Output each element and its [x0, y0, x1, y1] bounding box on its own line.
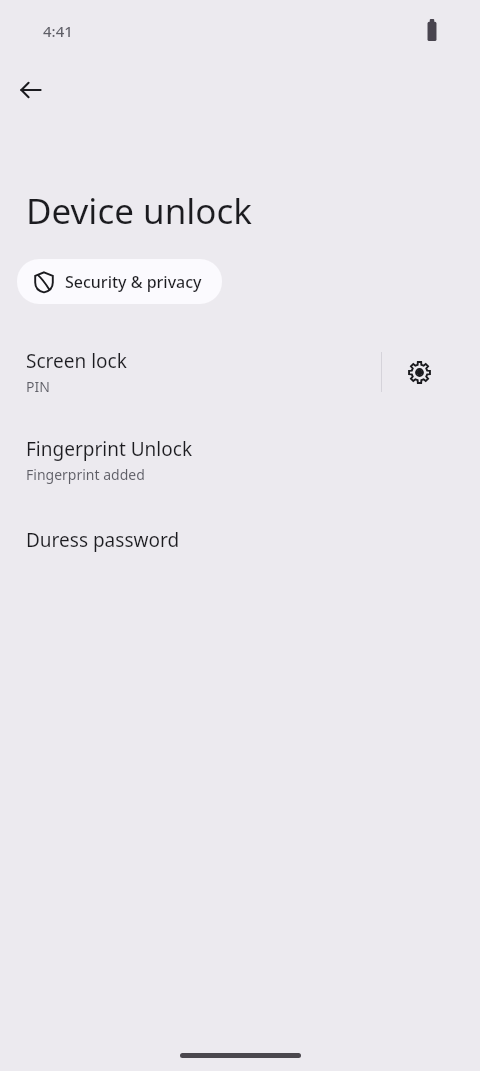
staticText: 4:41 — [43, 21, 73, 41]
staticText: Fingerprint Unlock — [26, 436, 193, 462]
staticText: Screen lock — [26, 348, 127, 374]
staticText: Duress password — [26, 527, 180, 553]
staticText: PIN — [26, 377, 50, 396]
button[interactable]: Screen lock — [0, 336, 370, 408]
button[interactable]: Back — [7, 66, 55, 114]
button[interactable]: Security & privacy — [17, 259, 222, 304]
staticText: Security & privacy — [65, 271, 202, 293]
staticText: Fingerprint added — [26, 465, 145, 484]
staticText: Device unlock — [26, 187, 252, 235]
button[interactable]: Fingerprint Unlock — [0, 424, 480, 496]
button[interactable]: Screen lock settings — [395, 348, 443, 396]
button[interactable]: Duress password — [0, 512, 480, 568]
